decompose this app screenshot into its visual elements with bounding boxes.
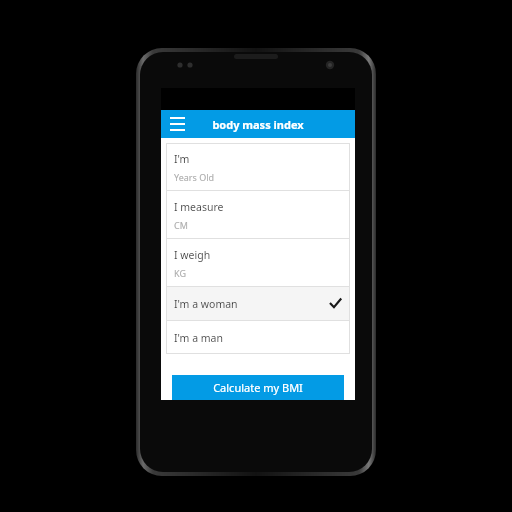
button[interactable]: Open navigation menu [166, 113, 188, 135]
button[interactable]: Calculate my BMI [172, 375, 344, 400]
staticText: Years Old [174, 171, 215, 183]
staticText: KG [174, 267, 186, 279]
staticText: I'm a woman [174, 297, 238, 311]
button[interactable]: I'm [166, 143, 350, 190]
staticText: body mass index [212, 117, 304, 132]
staticText: CM [174, 219, 188, 231]
button[interactable]: I'm a man [166, 321, 350, 354]
staticText: I weigh [174, 248, 211, 262]
button[interactable]: I measure [166, 191, 350, 238]
staticText: I measure [174, 200, 224, 214]
staticText: I'm a man [174, 331, 223, 345]
button[interactable]: I'm a woman [166, 287, 350, 320]
button[interactable]: I weigh [166, 239, 350, 286]
staticText: Calculate my BMI [213, 380, 303, 395]
staticText: I'm [174, 152, 190, 166]
